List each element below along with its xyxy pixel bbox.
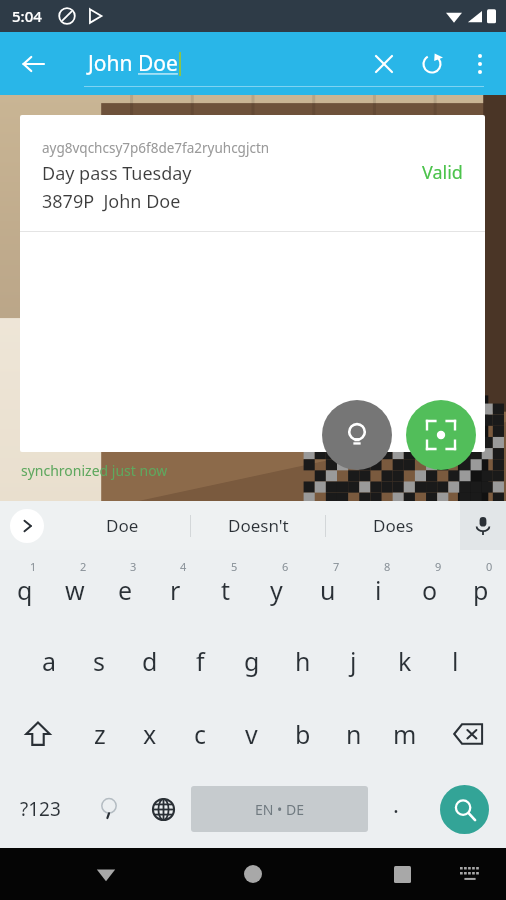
staticText: l [452, 644, 459, 678]
staticText: w [65, 573, 85, 607]
staticText: 7 [333, 559, 340, 574]
button[interactable]: Recent apps [380, 852, 424, 896]
staticText: t [221, 573, 231, 607]
staticText: 2 [80, 559, 87, 574]
button[interactable]: Doe [55, 501, 190, 550]
staticText: e [118, 573, 133, 607]
staticText: 5 [231, 559, 238, 574]
staticText: 5:04 [12, 6, 42, 26]
button[interactable]: g [226, 624, 277, 697]
staticText: i [375, 573, 382, 607]
staticText: Doesn't [228, 514, 289, 537]
staticText: 4 [180, 559, 187, 574]
staticText: v [245, 717, 258, 751]
button[interactable]: Toggle flashlight [322, 400, 392, 470]
button[interactable]: Search [440, 785, 489, 834]
button[interactable]: Home [231, 852, 275, 896]
button[interactable]: Back [84, 852, 128, 896]
button[interactable]: Does [326, 501, 460, 550]
staticText: n [346, 717, 362, 751]
button[interactable]: 3 [100, 550, 150, 624]
button[interactable]: a [24, 624, 74, 697]
staticText: y [270, 573, 283, 607]
button[interactable]: x [125, 697, 175, 770]
button[interactable]: ayg8vqchcsy7p6f8de7fa2ryuhcgjctn [20, 115, 485, 452]
staticText: EN • DE [255, 800, 304, 819]
button[interactable]: d [124, 624, 175, 697]
staticText: John [88, 49, 138, 78]
button[interactable]: Delete [430, 697, 506, 770]
staticText: Day pass Tuesday [42, 161, 192, 186]
button[interactable]: 8 [353, 550, 404, 624]
button[interactable]: s [74, 624, 124, 697]
button[interactable]: n [328, 697, 379, 770]
staticText: z [94, 717, 106, 751]
button[interactable]: Shift [0, 697, 75, 770]
button[interactable]: Switch keyboard [450, 854, 490, 894]
button[interactable]: 6 [251, 550, 302, 624]
staticText: x [143, 717, 157, 751]
staticText: 6 [282, 559, 289, 574]
staticText: o [422, 573, 438, 607]
button[interactable]: v [226, 697, 277, 770]
staticText: synchronized just now [21, 461, 168, 480]
staticText: a [42, 644, 57, 678]
button[interactable]: ?123 [0, 770, 81, 848]
staticText: Does [373, 514, 414, 537]
button[interactable]: Scan code [406, 400, 476, 470]
staticText: j [350, 644, 357, 678]
staticText: . [393, 789, 399, 819]
staticText: Valid [422, 160, 463, 185]
staticText: q [17, 573, 33, 607]
button[interactable]: f [175, 624, 226, 697]
staticText: ?123 [20, 796, 61, 822]
button[interactable]: j [328, 624, 379, 697]
staticText: ayg8vqchcsy7p6f8de7fa2ryuhcgjctn [42, 139, 270, 157]
button[interactable]: Back [10, 41, 56, 87]
button[interactable]: Clear [360, 40, 408, 88]
staticText: k [398, 644, 412, 678]
staticText: p [473, 573, 489, 607]
button[interactable]: Change language [136, 770, 191, 848]
button[interactable]: b [277, 697, 328, 770]
staticText: h [295, 644, 311, 678]
button[interactable]: m [379, 697, 430, 770]
staticText: c [194, 717, 207, 751]
staticText: 1 [30, 559, 37, 574]
button[interactable]: . [368, 770, 423, 848]
button[interactable]: z [75, 697, 125, 770]
staticText: 3879P John Doe [42, 189, 181, 214]
staticText: 3 [130, 559, 137, 574]
button[interactable]: 1 [0, 550, 50, 624]
button[interactable]: 2 [50, 550, 100, 624]
staticText: b [295, 717, 311, 751]
button[interactable]: 4 [150, 550, 200, 624]
button[interactable]: EN • DE [191, 786, 368, 832]
staticText: f [196, 644, 205, 678]
staticText: r [170, 573, 181, 607]
button[interactable]: More suggestions [10, 509, 44, 543]
button[interactable]: 9 [404, 550, 455, 624]
staticText: Doe [138, 49, 178, 78]
button[interactable]: h [277, 624, 328, 697]
staticText: m [393, 717, 417, 751]
button[interactable]: Refresh [408, 40, 456, 88]
staticText: 0 [486, 559, 493, 574]
staticText: Doe [106, 514, 139, 537]
button[interactable]: Voice input [460, 501, 506, 550]
staticText: d [142, 644, 158, 678]
button[interactable]: 5 [200, 550, 251, 624]
button[interactable]: k [379, 624, 430, 697]
button[interactable]: c [175, 697, 226, 770]
staticText: 9 [435, 559, 442, 574]
staticText: s [93, 644, 105, 678]
button[interactable]: 0 [455, 550, 506, 624]
button[interactable]: Doesn't [191, 501, 325, 550]
staticText: 8 [384, 559, 391, 574]
staticText: g [244, 644, 260, 678]
button[interactable]: Emoji [81, 770, 136, 848]
button[interactable]: More options [456, 40, 504, 88]
button[interactable]: 7 [302, 550, 353, 624]
button[interactable]: l [430, 624, 481, 697]
staticText: u [320, 573, 336, 607]
